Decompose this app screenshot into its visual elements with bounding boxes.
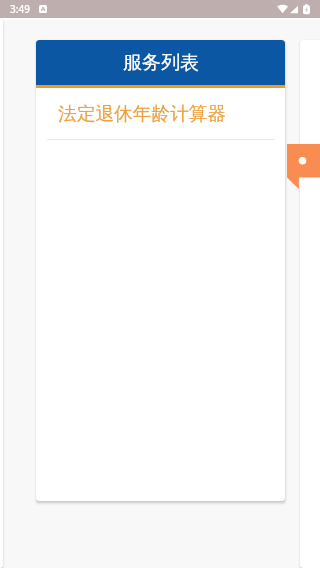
staticText: A	[41, 5, 46, 13]
staticText: 3:49	[10, 2, 30, 16]
button[interactable]: 在线客服	[287, 144, 320, 189]
button[interactable]: 法定退休年龄计算器	[36, 88, 285, 139]
staticText: 法定退休年龄计算器	[58, 102, 227, 126]
button[interactable]: 服务列表	[36, 40, 285, 85]
staticText: 服务列表	[123, 51, 199, 75]
